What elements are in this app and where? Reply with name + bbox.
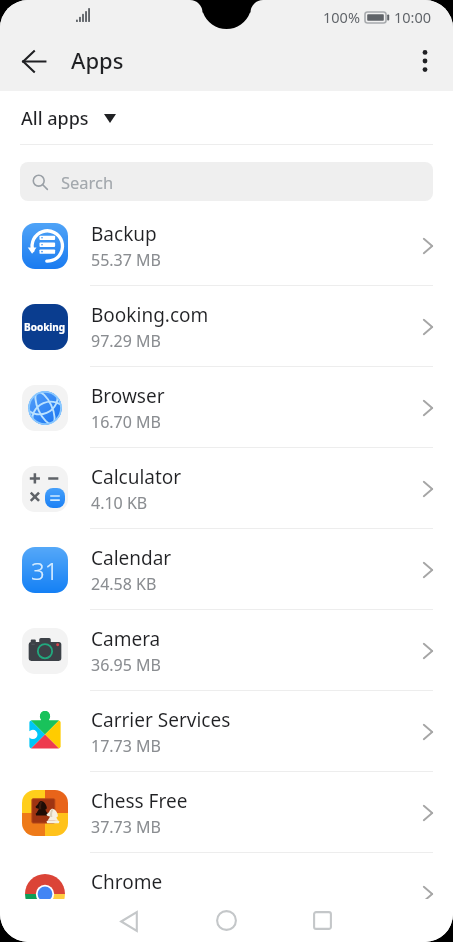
staticText: Calendar — [91, 545, 172, 571]
button[interactable]: Home — [198, 899, 254, 942]
staticText: Carrier Services — [91, 707, 231, 733]
button[interactable]: Camera — [0, 610, 453, 691]
staticText: Camera — [91, 626, 161, 652]
staticText: Calculator — [91, 464, 182, 490]
staticText: 100% — [323, 7, 360, 27]
staticText: 55.37 MB — [91, 249, 161, 271]
staticText: Browser — [91, 383, 165, 409]
button[interactable]: All apps — [0, 91, 453, 145]
staticText: 36.95 MB — [91, 654, 161, 676]
staticText: Backup — [91, 221, 157, 247]
staticText: Search — [61, 171, 114, 193]
staticText: 128.4 MB — [91, 897, 161, 919]
staticText: 24.58 KB — [91, 573, 157, 595]
button[interactable]: Recent apps — [294, 899, 350, 942]
staticText: Chrome — [91, 869, 163, 895]
staticText: 17.73 MB — [91, 735, 161, 757]
staticText: 37.73 MB — [91, 816, 161, 838]
button[interactable]: Search — [20, 162, 433, 201]
staticText: 16.70 MB — [91, 411, 161, 433]
button[interactable]: Chess Free — [0, 772, 453, 853]
staticText: Apps — [71, 45, 124, 75]
button[interactable]: More options — [401, 40, 449, 88]
staticText: Chess Free — [91, 788, 188, 814]
button[interactable]: Browser — [0, 367, 453, 448]
staticText: All apps — [21, 106, 89, 131]
staticText: Booking — [24, 320, 66, 334]
staticText: 97.29 MB — [91, 330, 161, 352]
button[interactable]: Chrome — [0, 853, 453, 934]
button[interactable]: 31 — [0, 529, 453, 610]
button[interactable]: Backup — [0, 205, 453, 286]
button[interactable]: Back — [10, 40, 58, 88]
staticText: 31 — [31, 554, 59, 587]
button[interactable]: Carrier Services — [0, 691, 453, 772]
staticText: 10:00 — [394, 7, 432, 27]
staticText: Booking.com — [91, 302, 209, 328]
button[interactable]: Back — [101, 899, 157, 942]
button[interactable]: Booking — [0, 286, 453, 367]
button[interactable]: Calculator — [0, 448, 453, 529]
staticText: 4.10 KB — [91, 492, 148, 514]
